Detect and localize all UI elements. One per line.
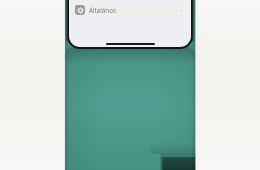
button[interactable]: Általános [72, 3, 188, 17]
staticText: Általános [89, 6, 180, 14]
